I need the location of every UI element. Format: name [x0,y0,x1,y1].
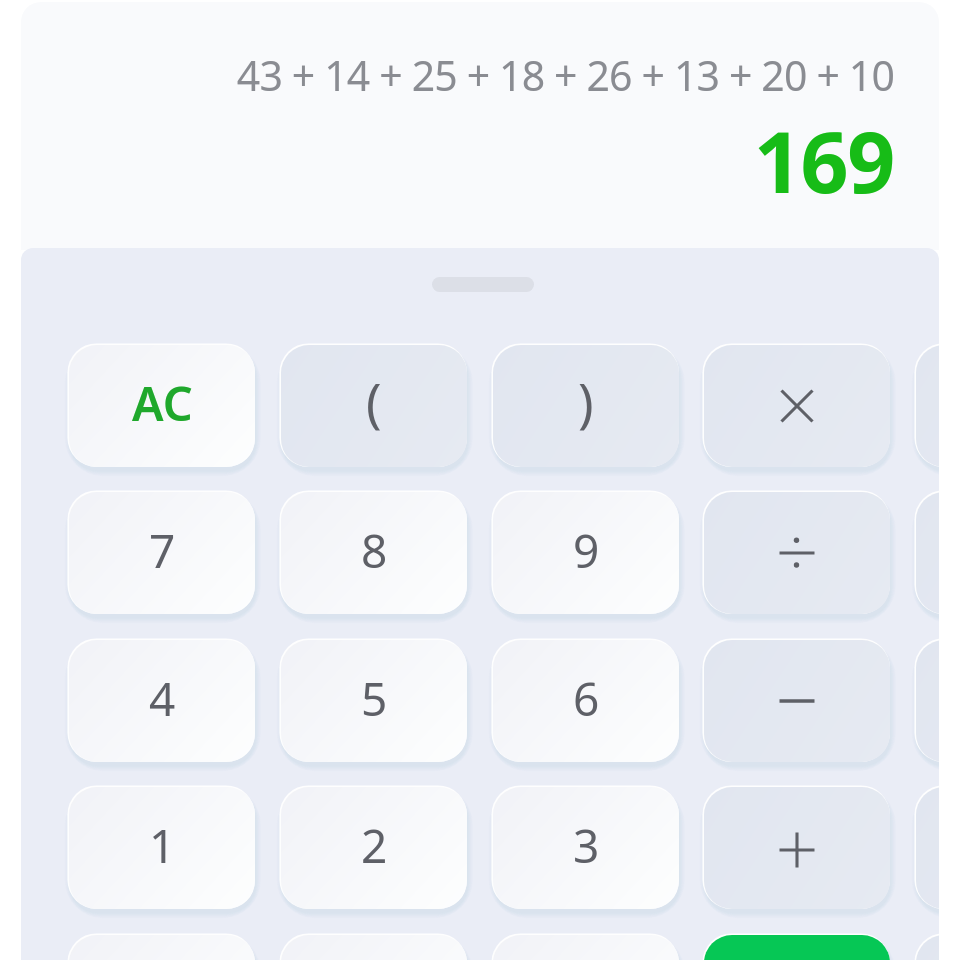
staticText: AC [132,371,193,435]
button[interactable]: 0 [281,935,467,960]
staticText: 43 + 14 + 25 + 18 + 26 + 13 + 20 + 10 [21,47,894,103]
button[interactable]: Percent [916,935,939,960]
button[interactable]: ) [493,345,679,467]
button[interactable]: Multiply [704,345,890,467]
staticText: ( [366,366,382,437]
button[interactable]: Minus [704,640,890,762]
staticText: 8 [361,519,388,582]
staticText: 6 [573,667,600,730]
button[interactable]: 1 [69,787,255,909]
staticText: 169 [21,103,894,217]
staticText: ) [578,366,594,437]
button[interactable]: 4 [69,640,255,762]
staticText: 4 [149,667,176,730]
button[interactable]: 2 [281,787,467,909]
button[interactable]: Backspace [916,492,939,614]
button[interactable]: % [69,935,255,960]
button[interactable]: 9 [493,492,679,614]
staticText: 2 [361,814,388,877]
button[interactable]: Plus [704,787,890,909]
button[interactable]: AC [69,345,255,467]
button[interactable]: Percent [916,787,939,909]
staticText: 9 [573,519,600,582]
staticText: 5 [361,667,388,730]
button[interactable]: 6 [493,640,679,762]
staticText: 3 [573,814,600,877]
button[interactable]: 8 [281,492,467,614]
staticText: 7 [149,519,176,582]
button[interactable]: Percent [916,640,939,762]
button[interactable]: ( [281,345,467,467]
button[interactable]: 5 [281,640,467,762]
button[interactable]: 3 [493,787,679,909]
button[interactable]: . [493,935,679,960]
button[interactable]: Equals [704,935,890,960]
button[interactable]: Divide [704,492,890,614]
staticText: 1 [149,814,176,877]
button[interactable]: Backspace [916,345,939,467]
button[interactable]: 7 [69,492,255,614]
